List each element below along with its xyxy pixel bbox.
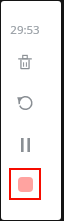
button[interactable]: Pause <box>9 129 41 161</box>
button[interactable]: Delete <box>9 46 41 78</box>
staticText: 29:53 <box>8 22 42 36</box>
button[interactable]: Stop recording <box>9 168 41 200</box>
button[interactable]: Undo <box>9 88 41 120</box>
